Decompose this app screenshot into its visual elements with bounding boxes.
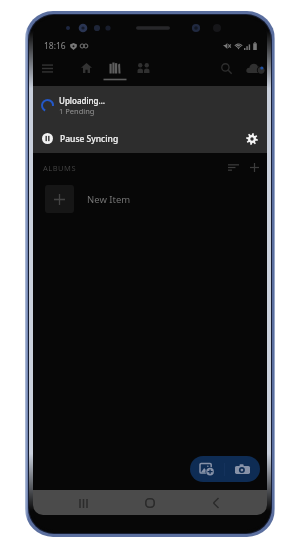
staticText: Uploading… — [59, 95, 106, 106]
button[interactable]: Back — [205, 492, 227, 514]
button[interactable]: Uploading… — [33, 86, 267, 124]
staticText: New Item — [87, 193, 131, 206]
button[interactable]: Create album — [244, 157, 264, 177]
button[interactable]: Sort — [223, 157, 243, 177]
button[interactable]: Cloud sync — [244, 57, 266, 79]
button[interactable]: Menu — [36, 57, 58, 79]
button[interactable]: Library — [103, 56, 127, 86]
staticText: 1 Pending — [59, 106, 95, 116]
button[interactable]: Recent apps — [72, 492, 94, 514]
staticText: 18:16 — [44, 40, 66, 52]
staticText: ALBUMS — [43, 163, 76, 173]
button[interactable]: Add photos — [190, 456, 224, 482]
button[interactable]: Search — [215, 57, 237, 79]
button[interactable]: People — [132, 57, 154, 79]
staticText: Pause Syncing — [60, 133, 119, 145]
button[interactable]: New Item — [33, 180, 267, 218]
button[interactable]: Home — [139, 492, 161, 514]
button[interactable]: Pause Syncing — [33, 124, 267, 153]
button[interactable]: Home — [75, 57, 97, 79]
button[interactable]: Sync settings — [239, 126, 265, 152]
button[interactable]: Camera — [225, 456, 260, 482]
